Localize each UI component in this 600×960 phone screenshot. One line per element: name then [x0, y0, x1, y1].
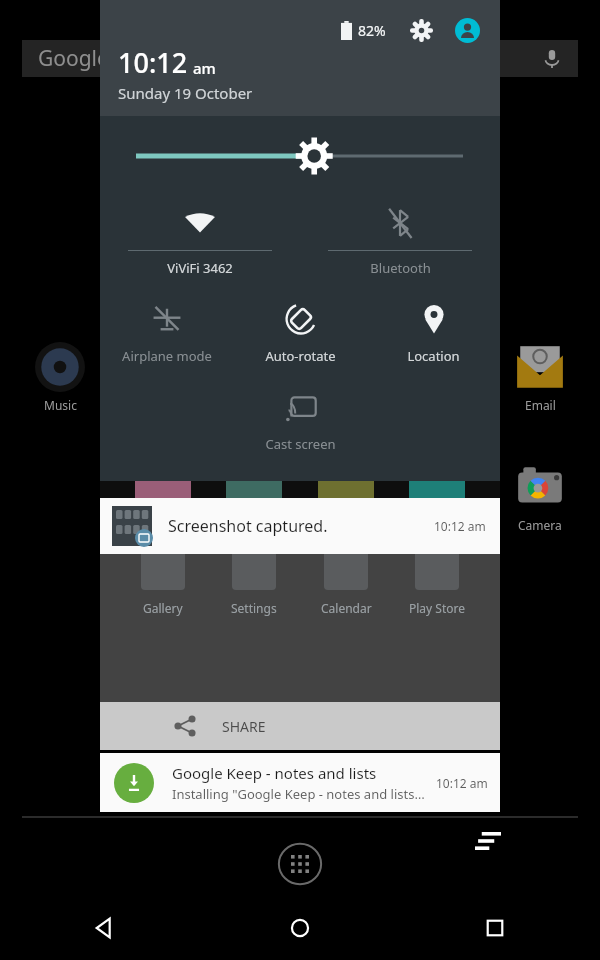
- staticText: am: [193, 58, 216, 78]
- button[interactable]: Google Keep - notes and lists: [100, 753, 500, 812]
- staticText: ViViFi 3462: [167, 259, 233, 277]
- staticText: Google Keep - notes and lists: [172, 763, 377, 783]
- button[interactable]: Clear all notifications: [471, 826, 505, 856]
- staticText: Play Store: [409, 600, 465, 616]
- button[interactable]: Screenshot captured.: [100, 498, 500, 554]
- button[interactable]: Location: [367, 291, 500, 379]
- staticText: Email: [525, 397, 556, 413]
- button[interactable]: Email: [510, 341, 570, 413]
- button[interactable]: SHARE: [100, 702, 500, 750]
- staticText: Camera: [518, 517, 562, 533]
- staticText: Settings: [231, 600, 277, 616]
- staticText: Calendar: [321, 600, 372, 616]
- button[interactable]: Home: [272, 900, 328, 956]
- staticText: Music: [44, 397, 77, 413]
- staticText: Bluetooth: [370, 259, 431, 277]
- button[interactable]: Airplane mode: [100, 291, 234, 379]
- staticText: SHARE: [222, 717, 266, 736]
- staticText: Gallery: [143, 600, 183, 616]
- staticText: Cast screen: [265, 435, 336, 453]
- button[interactable]: Music: [30, 341, 90, 413]
- button[interactable]: Auto-rotate: [234, 291, 367, 379]
- button[interactable]: Brightness: [100, 136, 500, 176]
- staticText: Auto-rotate: [265, 347, 336, 365]
- staticText: Sunday 19 October: [118, 83, 253, 103]
- staticText: Airplane mode: [122, 347, 212, 365]
- button[interactable]: Camera: [510, 461, 570, 533]
- button[interactable]: Bluetooth: [312, 196, 488, 291]
- button[interactable]: Voice search: [536, 43, 568, 75]
- button[interactable]: ViViFi 3462: [112, 196, 288, 291]
- button[interactable]: Cast screen: [234, 379, 367, 467]
- button[interactable]: Apps: [276, 840, 324, 888]
- button[interactable]: Switch user: [452, 15, 482, 45]
- staticText: Location: [407, 347, 460, 365]
- staticText: 10:12 am: [434, 518, 486, 534]
- button[interactable]: Google: [22, 40, 578, 77]
- staticText: 10:12: [118, 44, 188, 81]
- button[interactable]: Settings: [406, 15, 436, 45]
- staticText: Installing "Google Keep - notes and list…: [172, 785, 430, 803]
- staticText: 10:12 am: [436, 775, 488, 791]
- staticText: Google: [38, 44, 109, 73]
- staticText: Contacts: [137, 502, 187, 518]
- staticText: Screenshot captured.: [168, 515, 434, 537]
- button[interactable]: Back: [77, 900, 133, 956]
- staticText: 82%: [358, 21, 386, 40]
- button[interactable]: Recent apps: [467, 900, 523, 956]
